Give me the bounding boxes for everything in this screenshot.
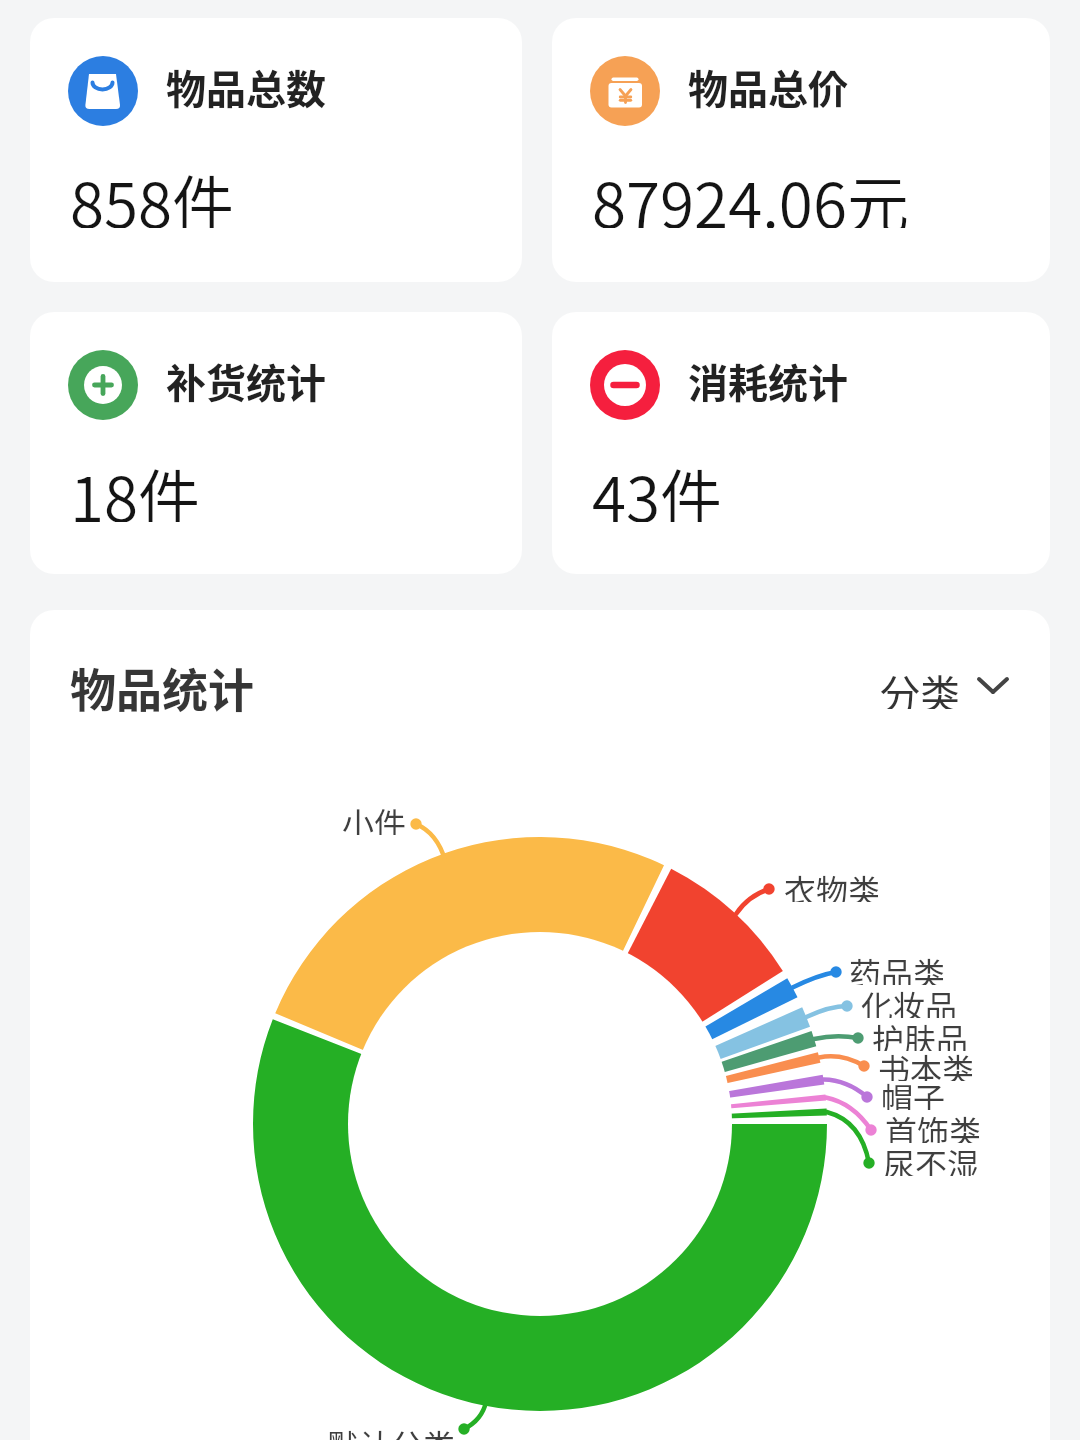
- staticText: 消耗统计: [688, 352, 848, 410]
- staticText: 首饰类: [885, 1107, 982, 1143]
- button[interactable]: 分类: [880, 663, 1040, 709]
- staticText: 物品总数: [166, 58, 326, 116]
- staticText: 尿不湿: [883, 1140, 980, 1176]
- button[interactable]: 消耗统计: [552, 312, 1050, 574]
- staticText: 物品总价: [688, 58, 848, 116]
- staticText: 默认分类: [327, 1421, 456, 1440]
- button[interactable]: 补货统计: [30, 312, 522, 574]
- staticText: 书本类: [878, 1045, 975, 1081]
- staticText: 化妆品: [861, 982, 958, 1018]
- staticText: 43件: [592, 450, 723, 522]
- staticText: 药品类: [849, 949, 946, 985]
- staticText: 补货统计: [166, 352, 326, 410]
- staticText: 衣物类: [784, 866, 881, 902]
- staticText: 小件: [342, 799, 407, 835]
- button[interactable]: 物品总价: [552, 18, 1050, 282]
- staticText: 分类: [880, 663, 960, 709]
- staticText: 物品统计: [70, 654, 254, 720]
- staticText: 87924.06元: [592, 156, 909, 228]
- staticText: 858件: [70, 156, 235, 228]
- button[interactable]: 物品总数: [30, 18, 522, 282]
- staticText: 帽子: [881, 1074, 946, 1110]
- staticText: 18件: [70, 450, 201, 522]
- staticText: 护肤品: [872, 1015, 969, 1051]
